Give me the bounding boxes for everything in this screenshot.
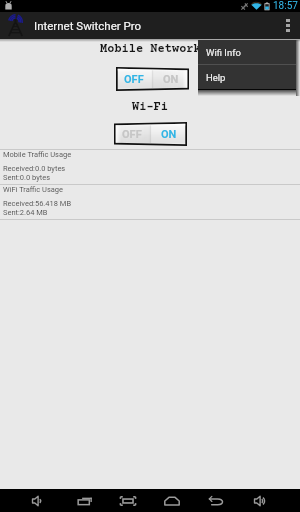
button[interactable]: Toggle, on	[114, 122, 187, 146]
staticText: Sent:2.64 MB	[3, 208, 48, 217]
button[interactable]: Toggle, off	[116, 67, 189, 91]
staticText: 18:57	[273, 0, 298, 12]
button[interactable]: Wifi Info	[198, 40, 296, 64]
button[interactable]: Screenshot	[112, 489, 144, 512]
button[interactable]: Home	[156, 489, 188, 512]
button[interactable]: Recent apps	[69, 489, 101, 512]
staticText: ON	[161, 128, 177, 141]
staticText: Internet Switcher Pro	[34, 19, 142, 32]
staticText: Received:0.0 bytes	[3, 164, 66, 173]
staticText: Mobile Network	[100, 43, 201, 56]
staticText: Help	[206, 72, 226, 83]
staticText: OFF	[124, 73, 144, 86]
staticText: OFF	[122, 128, 142, 141]
button[interactable]: Back	[200, 489, 232, 512]
staticText: ON	[163, 73, 179, 86]
staticText: Wifi Info	[206, 47, 241, 58]
staticText: WiFi Traffic Usage	[3, 185, 64, 194]
button[interactable]: More options	[276, 12, 300, 39]
button[interactable]: Help	[198, 65, 296, 89]
button[interactable]: Volume up	[245, 489, 277, 512]
staticText: Received:56.418 MB	[3, 199, 72, 208]
staticText: Wi-Fi	[132, 101, 168, 114]
button[interactable]: Volume down	[23, 489, 55, 512]
staticText: Sent:0.0 bytes	[3, 173, 51, 182]
staticText: Mobile Traffic Usage	[3, 150, 72, 159]
